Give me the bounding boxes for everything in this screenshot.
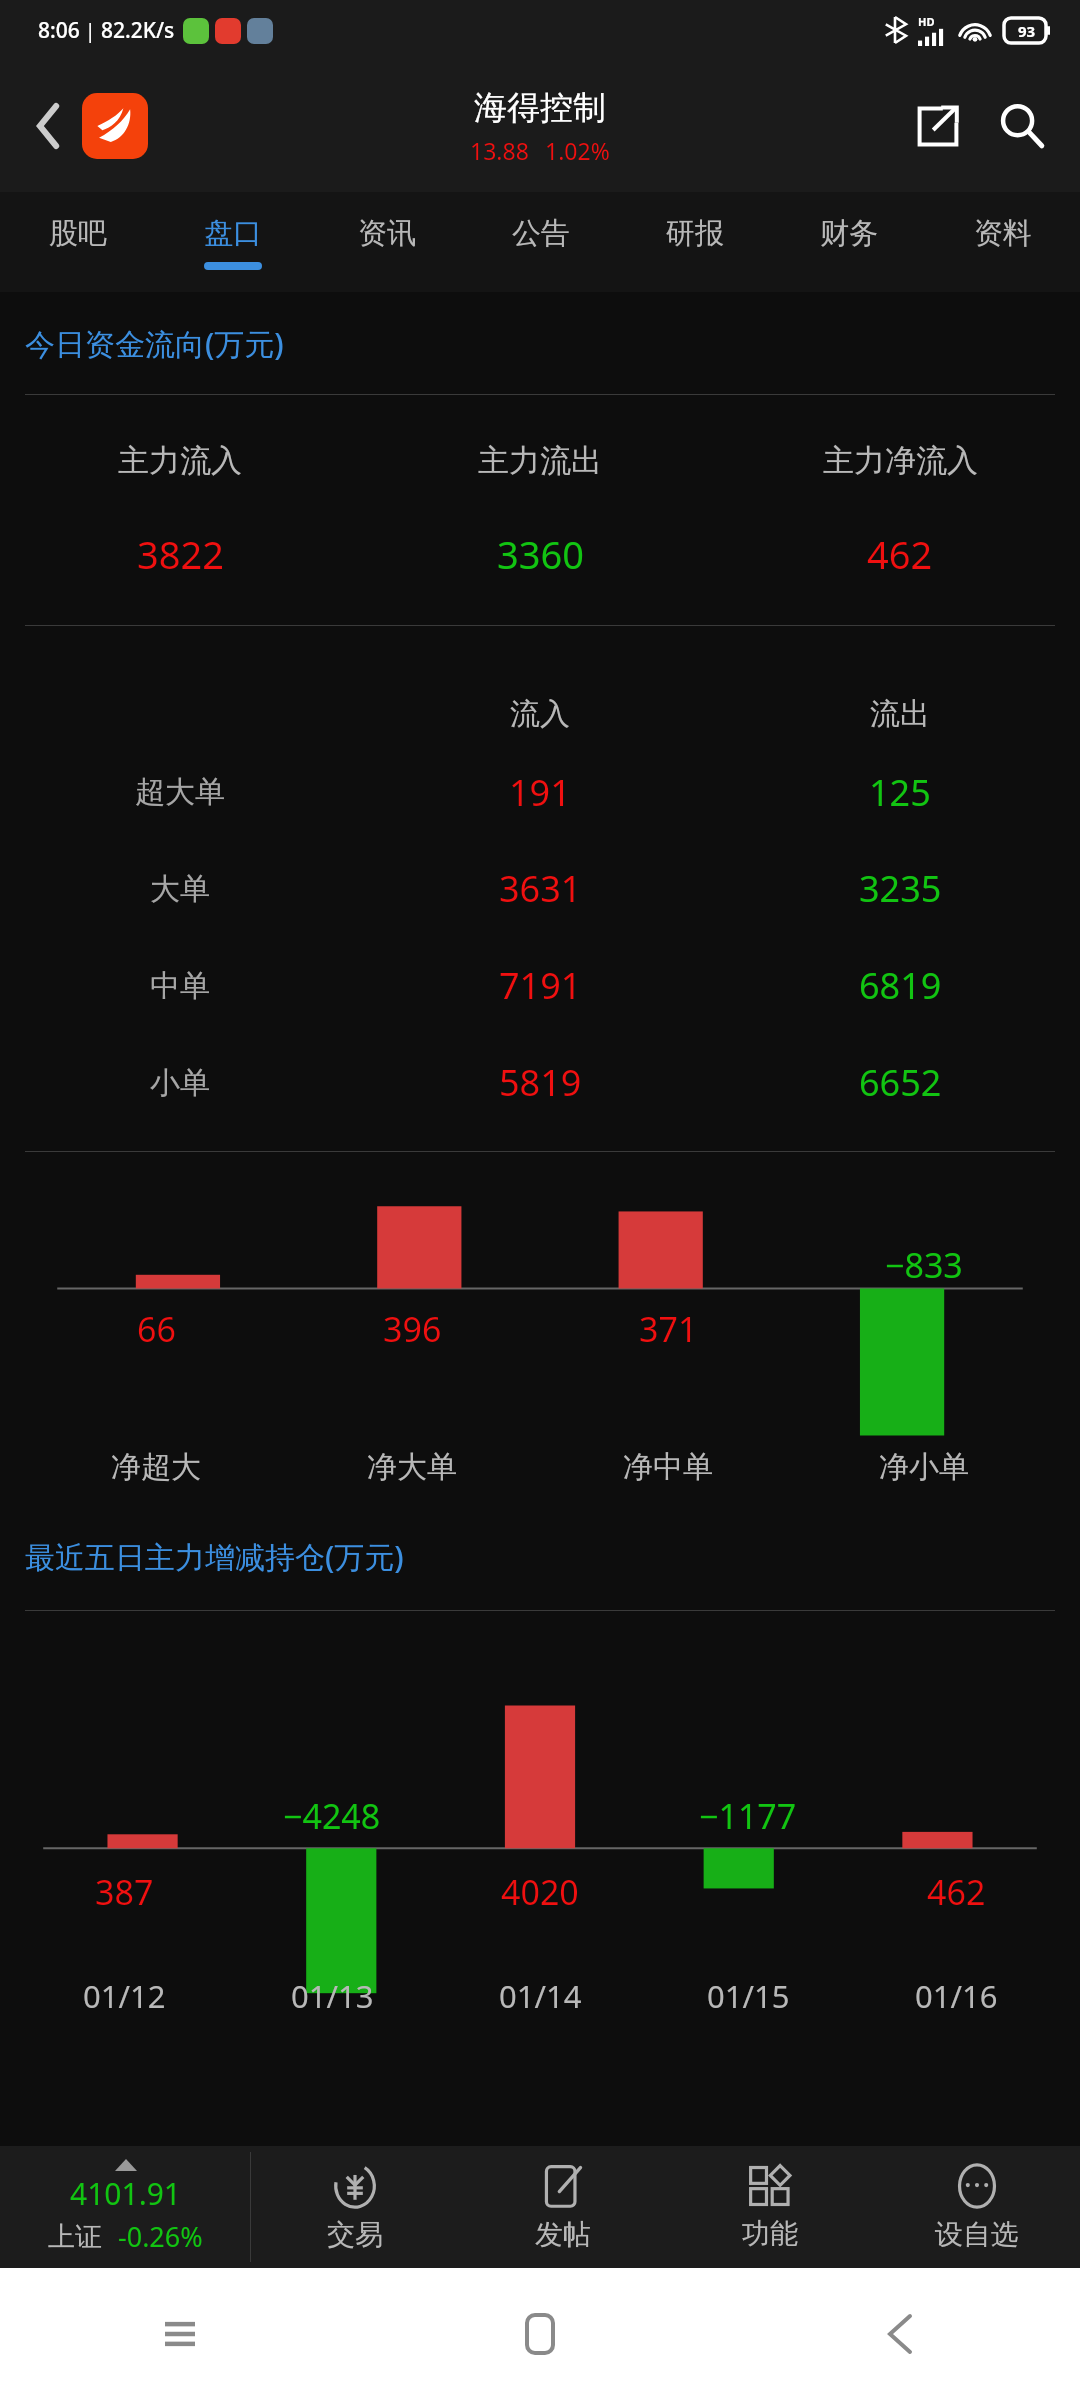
staticText: −833: [885, 1242, 963, 1288]
staticText: 3360: [497, 528, 584, 580]
staticText: |: [80, 18, 101, 44]
button[interactable]: Search: [986, 90, 1058, 162]
staticText: 发帖: [535, 2217, 591, 2252]
staticText: 净小单: [879, 1448, 969, 1486]
staticText: 01/14: [499, 1975, 582, 2017]
staticText: 3631: [499, 864, 582, 913]
staticText: 01/16: [915, 1975, 998, 2017]
staticText: 6819: [859, 961, 942, 1010]
staticText: 125: [869, 768, 931, 817]
button[interactable]: Back: [720, 2268, 1080, 2400]
staticText: 超大单: [135, 773, 225, 811]
staticText: 462: [867, 528, 933, 580]
staticText: 海得控制: [474, 87, 606, 129]
button[interactable]: 盘口: [155, 192, 310, 292]
staticText: −1177: [699, 1793, 797, 1839]
button[interactable]: Back: [20, 97, 78, 155]
button[interactable]: Recents: [0, 2268, 360, 2400]
staticText: 82.2K/s: [101, 16, 175, 45]
button[interactable]: 交易: [251, 2146, 459, 2268]
staticText: 流入: [510, 695, 570, 733]
staticText: 财务: [820, 215, 878, 252]
staticText: -0.26%: [118, 2218, 203, 2255]
button[interactable]: 设自选: [873, 2146, 1080, 2268]
staticText: 资料: [974, 215, 1032, 252]
button[interactable]: 资讯: [310, 192, 464, 292]
button[interactable]: 财务: [772, 192, 926, 292]
staticText: 3235: [859, 864, 942, 913]
button[interactable]: 股吧: [0, 192, 155, 292]
button[interactable]: 发帖: [459, 2146, 666, 2268]
staticText: 387: [95, 1869, 154, 1915]
staticText: 191: [509, 768, 571, 817]
button[interactable]: Home: [360, 2268, 720, 2400]
staticText: 净超大: [111, 1448, 201, 1486]
staticText: 净中单: [623, 1448, 713, 1486]
staticText: HD: [918, 14, 935, 29]
staticText: 设自选: [935, 2217, 1019, 2252]
staticText: 公告: [512, 215, 570, 252]
staticText: 上证: [48, 2220, 102, 2254]
button[interactable]: Share: [902, 90, 974, 162]
staticText: 13.88: [470, 135, 529, 166]
staticText: 股吧: [49, 215, 107, 252]
staticText: 4101.91: [70, 2173, 181, 2214]
staticText: 1.02%: [545, 135, 610, 166]
staticText: 今日资金流向(万元): [25, 323, 284, 364]
staticText: 交易: [327, 2217, 383, 2252]
staticText: 大单: [150, 870, 210, 908]
staticText: 7191: [499, 961, 582, 1010]
staticText: 462: [927, 1869, 986, 1915]
staticText: 小单: [150, 1064, 210, 1102]
staticText: 371: [639, 1306, 698, 1352]
staticText: 功能: [742, 2216, 798, 2251]
staticText: 净大单: [367, 1448, 457, 1486]
button[interactable]: 资料: [926, 192, 1080, 292]
staticText: 3822: [137, 528, 224, 580]
staticText: 中单: [150, 967, 210, 1005]
staticText: 最近五日主力增减持仓(万元): [25, 1536, 404, 1577]
staticText: 66: [137, 1306, 176, 1352]
staticText: 盘口: [204, 215, 262, 252]
staticText: 8:06: [38, 16, 80, 45]
button[interactable]: 公告: [464, 192, 618, 292]
staticText: 4020: [501, 1869, 579, 1915]
staticText: 主力流出: [478, 441, 602, 480]
staticText: 01/15: [707, 1975, 790, 2017]
staticText: 流出: [870, 695, 930, 733]
button[interactable]: App logo: [82, 93, 148, 159]
staticText: −4248: [283, 1793, 381, 1839]
staticText: 01/12: [83, 1975, 166, 2017]
button[interactable]: 研报: [618, 192, 772, 292]
staticText: 93: [1018, 21, 1036, 41]
staticText: 研报: [666, 215, 724, 252]
staticText: 主力流入: [118, 441, 242, 480]
staticText: 6652: [859, 1058, 942, 1107]
staticText: 396: [383, 1306, 442, 1352]
button[interactable]: 4101.91: [0, 2146, 250, 2268]
button[interactable]: 功能: [666, 2146, 873, 2268]
staticText: 01/13: [291, 1975, 374, 2017]
staticText: 5819: [499, 1058, 582, 1107]
staticText: 主力净流入: [823, 441, 978, 480]
staticText: 资讯: [358, 215, 416, 252]
